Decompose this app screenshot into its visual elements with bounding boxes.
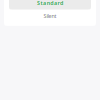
button[interactable]: Standard (9, 0, 91, 9)
button[interactable]: Silent (9, 9, 91, 22)
staticText: Silent (43, 12, 56, 20)
staticText: Standard (37, 0, 63, 7)
